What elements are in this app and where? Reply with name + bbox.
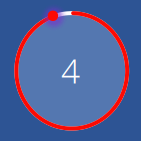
staticText: 4: [61, 48, 80, 93]
